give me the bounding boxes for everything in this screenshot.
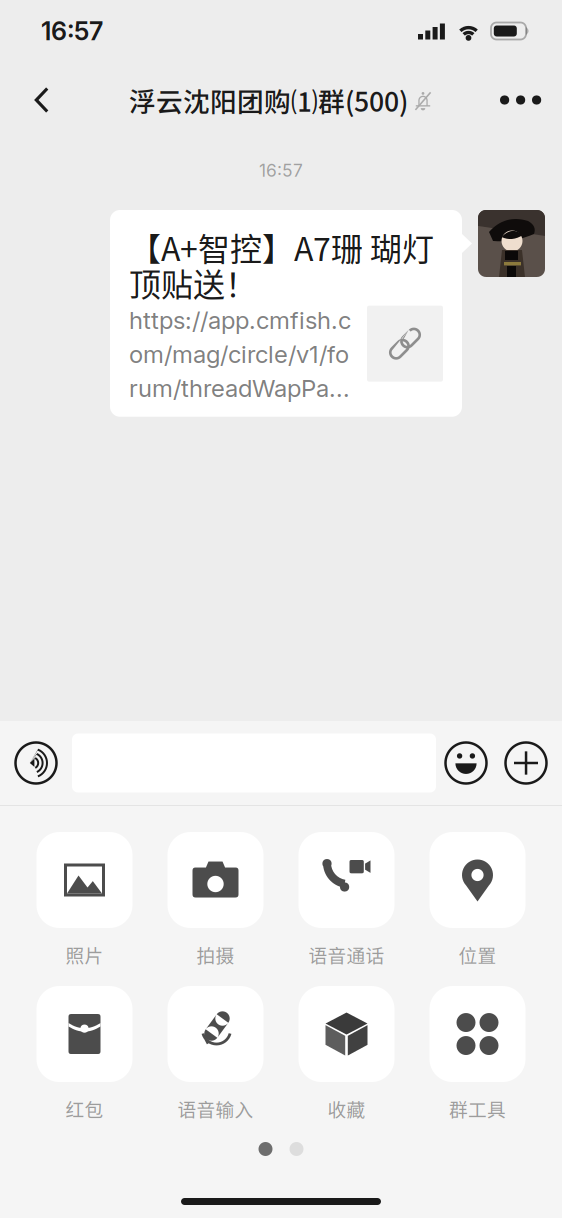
button[interactable]: 红包 (19, 986, 150, 1122)
staticText: 语音输入 (177, 1095, 253, 1122)
button[interactable]: 收藏 (281, 986, 412, 1122)
button[interactable]: 位置 (412, 832, 543, 968)
staticText: 【A+智控】A7珊 瑚灯 顶贴送！ (129, 224, 434, 306)
button[interactable]: 群工具 (412, 986, 543, 1122)
staticText: 16:57 (259, 160, 303, 181)
button[interactable]: Voice message (0, 721, 72, 805)
staticText: 位置 (458, 941, 496, 968)
button[interactable]: 语音通话 (281, 832, 412, 968)
button[interactable]: 拍摄 (150, 832, 281, 968)
staticText: 拍摄 (196, 941, 234, 968)
staticText: 浮云沈阳团购⑴群(500) (129, 81, 408, 119)
staticText: https://app.cmfish.c om/mag/circle/v1/fo… (129, 306, 351, 403)
staticText: 收藏 (327, 1095, 365, 1122)
staticText: 红包 (65, 1095, 103, 1122)
button[interactable]: More options (488, 67, 554, 133)
staticText: 群工具 (449, 1095, 506, 1122)
button[interactable]: Back (8, 67, 74, 133)
staticText: 照片 (65, 941, 103, 968)
staticText: 16:57 (41, 16, 103, 46)
button[interactable]: 照片 (19, 832, 150, 968)
button[interactable]: More actions (496, 721, 556, 805)
staticText: 语音通话 (308, 941, 384, 968)
button[interactable]: 语音输入 (150, 986, 281, 1122)
button[interactable]: Emoji (436, 721, 496, 805)
